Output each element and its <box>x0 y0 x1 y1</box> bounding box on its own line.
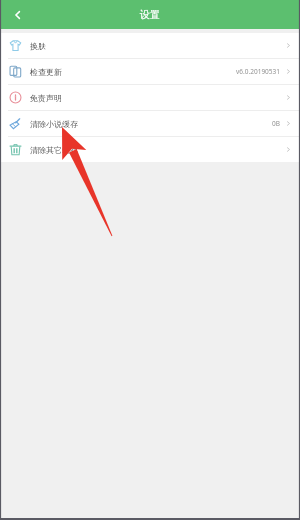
button[interactable]: 检查更新 <box>0 59 300 84</box>
staticText: 换肤 <box>30 41 46 51</box>
staticText: 清除其它缓存 <box>30 145 78 155</box>
staticText: 清除小说缓存 <box>30 119 78 129</box>
button[interactable]: 清除小说缓存 <box>0 111 300 136</box>
staticText: 免责声明 <box>30 93 62 103</box>
staticText: 设置 <box>140 8 160 21</box>
button[interactable]: Back <box>7 4 29 26</box>
button[interactable]: 换肤 <box>0 33 300 58</box>
staticText: 0B <box>272 119 280 128</box>
staticText: v6.0.20190531 <box>236 67 280 76</box>
button[interactable]: 免责声明 <box>0 85 300 110</box>
staticText: 检查更新 <box>30 67 62 77</box>
button[interactable]: 清除其它缓存 <box>0 137 300 162</box>
